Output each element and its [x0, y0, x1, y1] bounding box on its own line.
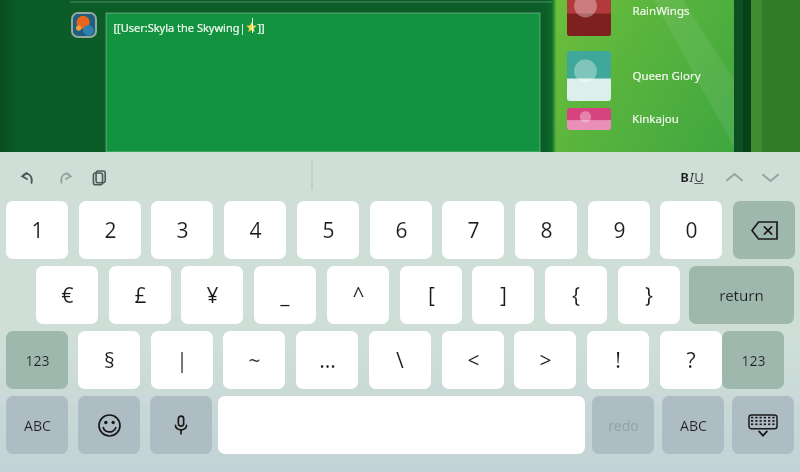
button[interactable]: |: [151, 331, 213, 389]
staticText: 2: [104, 216, 117, 245]
staticText: 123: [25, 351, 50, 370]
button[interactable]: \: [369, 331, 431, 389]
staticText: ABC: [680, 416, 707, 435]
button[interactable]: 0: [660, 201, 722, 259]
button[interactable]: …: [296, 331, 358, 389]
staticText: I: [689, 168, 694, 186]
button[interactable]: Next: [757, 164, 784, 191]
button[interactable]: ]: [472, 266, 534, 324]
staticText: RainWings: [632, 3, 690, 19]
staticText: ^: [352, 281, 365, 310]
staticText: !: [615, 346, 621, 375]
button[interactable]: }: [618, 266, 680, 324]
button[interactable]: ABC: [6, 396, 68, 454]
button[interactable]: >: [514, 331, 576, 389]
button[interactable]: {: [545, 266, 607, 324]
button[interactable]: !: [587, 331, 649, 389]
staticText: \: [396, 346, 404, 375]
staticText: 0: [685, 216, 698, 245]
button[interactable]: ABC: [662, 396, 724, 454]
staticText: [[User:Skyla the Skywing|: [113, 20, 246, 35]
staticText: 6: [395, 216, 408, 245]
button[interactable]: Undo: [14, 163, 42, 191]
staticText: ¥: [206, 281, 219, 310]
button[interactable]: B: [676, 161, 708, 193]
button[interactable]: Backspace: [733, 201, 795, 259]
staticText: >: [539, 346, 552, 375]
staticText: ?: [686, 346, 696, 375]
staticText: …: [319, 346, 336, 375]
button[interactable]: Hide keyboard: [732, 396, 794, 454]
button[interactable]: redo: [592, 396, 654, 454]
button[interactable]: 3: [151, 201, 213, 259]
staticText: 9: [613, 216, 626, 245]
staticText: |: [176, 346, 188, 375]
button[interactable]: 1: [6, 201, 68, 259]
button[interactable]: Kinkajou: [556, 108, 800, 130]
staticText: ]: [500, 281, 507, 310]
staticText: 7: [467, 216, 480, 245]
staticText: ~: [248, 346, 261, 375]
staticText: €: [61, 281, 74, 310]
button[interactable]: ^: [327, 266, 389, 324]
button[interactable]: 7: [442, 201, 504, 259]
staticText: 123: [741, 351, 766, 370]
button[interactable]: 2: [79, 201, 141, 259]
button[interactable]: <: [442, 331, 504, 389]
button[interactable]: 9: [588, 201, 650, 259]
button[interactable]: 5: [297, 201, 359, 259]
button[interactable]: _: [254, 266, 316, 324]
staticText: _: [280, 281, 290, 310]
button[interactable]: ~: [223, 331, 285, 389]
staticText: U: [694, 168, 704, 186]
staticText: {: [572, 281, 580, 310]
staticText: return: [719, 285, 764, 305]
staticText: 3: [176, 216, 189, 245]
button[interactable]: [: [400, 266, 462, 324]
button[interactable]: 4: [224, 201, 286, 259]
button[interactable]: Dictation: [150, 396, 212, 454]
staticText: redo: [608, 416, 639, 435]
staticText: §: [104, 346, 115, 375]
button[interactable]: €: [36, 266, 98, 324]
button[interactable]: 6: [370, 201, 432, 259]
button[interactable]: RainWings: [556, 0, 800, 43]
staticText: <: [467, 346, 480, 375]
button[interactable]: 8: [515, 201, 577, 259]
staticText: £: [134, 281, 147, 310]
staticText: 1: [31, 216, 44, 245]
button[interactable]: Paste: [85, 163, 113, 191]
button[interactable]: return: [689, 266, 794, 324]
button[interactable]: Redo: [50, 163, 78, 191]
staticText: B: [680, 168, 689, 186]
button[interactable]: Previous: [721, 164, 748, 191]
staticText: 8: [540, 216, 553, 245]
button[interactable]: Emoji: [78, 396, 140, 454]
button[interactable]: §: [78, 331, 140, 389]
staticText: Queen Glory: [632, 68, 701, 84]
staticText: 5: [322, 216, 335, 245]
staticText: }: [645, 281, 653, 310]
staticText: 4: [249, 216, 262, 245]
button[interactable]: 123: [6, 331, 68, 389]
button[interactable]: User avatar: [71, 12, 97, 38]
button[interactable]: Queen Glory: [556, 43, 800, 108]
button[interactable]: [[User:Skyla the Skywing|: [106, 13, 540, 152]
staticText: Kinkajou: [632, 111, 679, 127]
button[interactable]: ¥: [181, 266, 243, 324]
button[interactable]: ?: [660, 331, 722, 389]
staticText: [: [428, 281, 435, 310]
button[interactable]: 123: [722, 331, 784, 389]
button[interactable]: £: [109, 266, 171, 324]
staticText: ABC: [24, 416, 51, 435]
staticText: ]]: [257, 20, 265, 35]
